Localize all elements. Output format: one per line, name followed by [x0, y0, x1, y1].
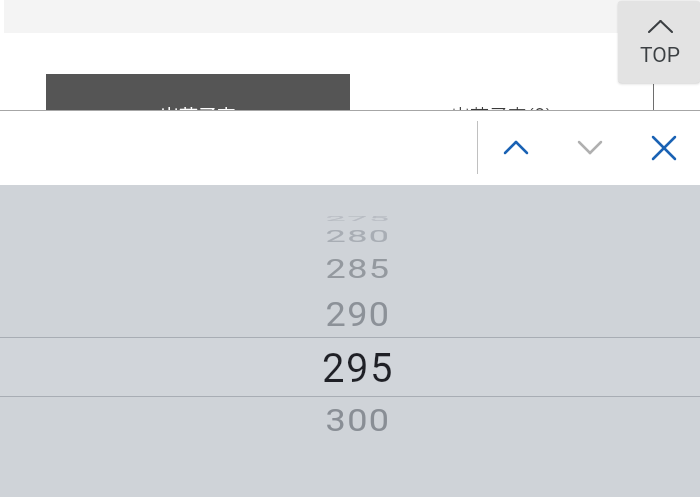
staticText: 290 [325, 296, 391, 334]
staticText: 280 [325, 226, 391, 246]
button[interactable]: 出荷予定 [46, 74, 350, 110]
staticText: 295 [322, 345, 394, 392]
button[interactable]: 290 [0, 285, 700, 345]
button[interactable]: 275 [0, 189, 700, 249]
button[interactable]: 285 [0, 239, 700, 299]
staticText: 275 [325, 215, 391, 223]
staticText: 285 [325, 254, 391, 284]
button[interactable]: Scroll to top [618, 1, 700, 83]
staticText: TOP [640, 43, 680, 68]
staticText: 出荷予定(0) [451, 103, 553, 131]
button[interactable]: 295 [0, 338, 700, 398]
button[interactable]: Next field [553, 110, 627, 185]
button[interactable]: Previous field [479, 110, 553, 185]
button[interactable]: 出荷予定(0) [350, 74, 653, 110]
button[interactable]: Close [627, 110, 700, 185]
button[interactable]: 280 [0, 206, 700, 266]
button[interactable]: 300 [0, 390, 700, 450]
staticText: 300 [325, 401, 391, 438]
staticText: 出荷予定 [160, 103, 237, 131]
